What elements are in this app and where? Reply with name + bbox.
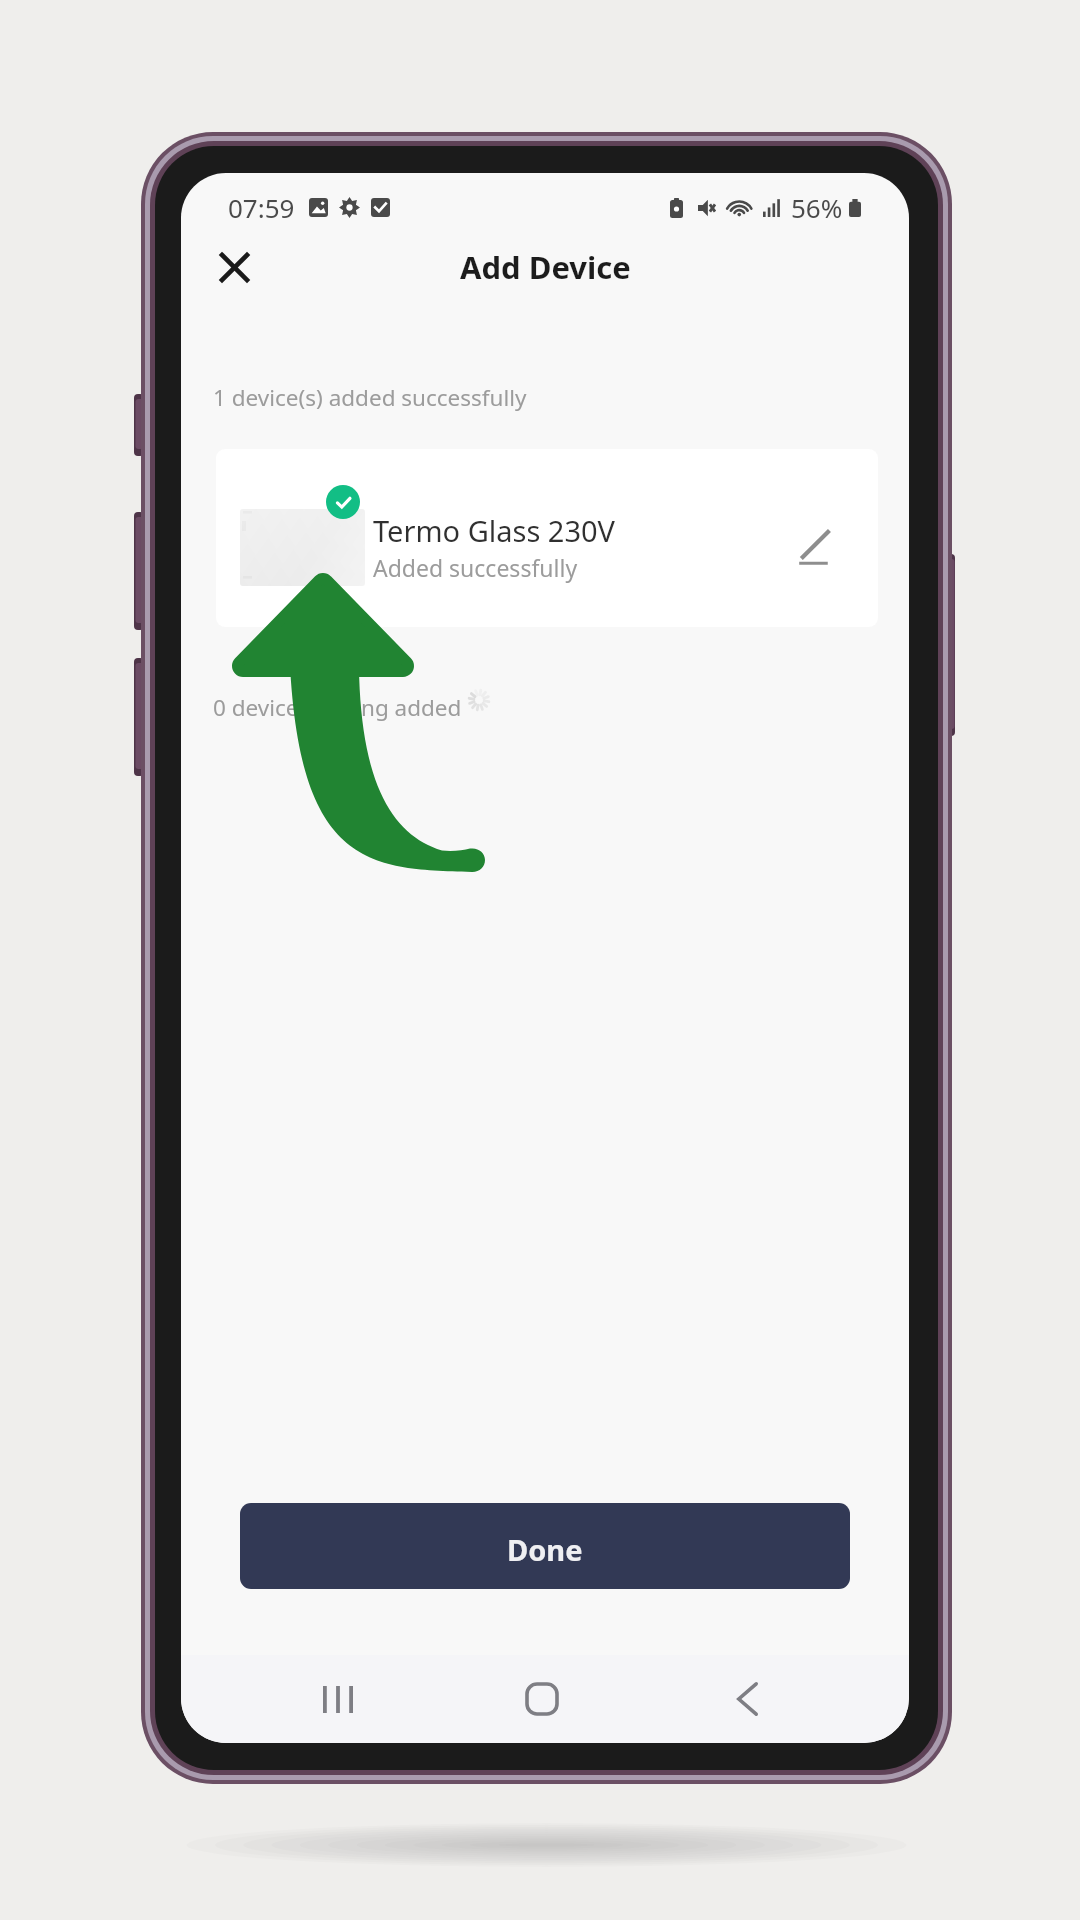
staticText: 07:59 (228, 190, 295, 225)
staticText: Termo Glass 230V (373, 511, 615, 550)
button[interactable]: Back (697, 1655, 797, 1743)
button[interactable]: Home (492, 1655, 592, 1743)
staticText: 1 device(s) added successfully (213, 382, 527, 413)
button[interactable]: Recent apps (288, 1655, 388, 1743)
staticText: Added successfully (373, 552, 578, 583)
button[interactable]: Termo Glass 230V (216, 449, 878, 627)
button[interactable]: Done (240, 1503, 850, 1589)
button[interactable]: Rename device (783, 513, 849, 579)
staticText: 56% (791, 190, 843, 225)
staticText: Add Device (460, 246, 631, 288)
staticText: Done (507, 1530, 583, 1569)
staticText: 0 device(s) being added (213, 692, 462, 723)
button[interactable]: Close (206, 239, 262, 295)
